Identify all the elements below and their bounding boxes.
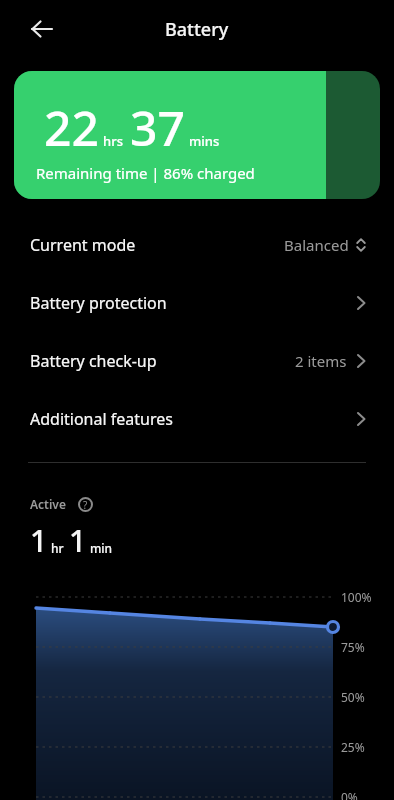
staticText: 1 <box>30 520 48 560</box>
button[interactable]: Battery protection <box>0 274 394 332</box>
button[interactable]: Additional features <box>0 390 394 448</box>
staticText: 25% <box>341 739 365 755</box>
staticText: 1 <box>69 520 87 560</box>
staticText: Battery protection <box>30 292 167 314</box>
staticText: 37 <box>130 95 185 160</box>
staticText: Additional features <box>30 408 173 430</box>
button[interactable]: Current mode <box>0 216 394 274</box>
staticText: Current mode <box>30 234 136 256</box>
staticText: ? <box>83 498 88 512</box>
staticText: min <box>90 540 113 556</box>
staticText: 50% <box>341 689 365 705</box>
staticText: 75% <box>341 639 365 655</box>
staticText: hr <box>51 540 64 556</box>
staticText: Active <box>30 496 66 512</box>
button[interactable] <box>26 13 58 45</box>
staticText: 100% <box>341 589 372 605</box>
staticText: hrs <box>103 132 123 150</box>
staticText: 2 items <box>295 351 347 371</box>
staticText: mins <box>189 132 220 150</box>
button[interactable]: 22 <box>14 71 380 199</box>
staticText: 22 <box>44 95 99 160</box>
staticText: 0% <box>341 789 358 800</box>
staticText: Balanced <box>284 235 349 255</box>
staticText: Battery check-up <box>30 350 157 372</box>
staticText: Remaining time | 86% charged <box>36 163 255 183</box>
staticText: Battery <box>165 17 229 42</box>
button[interactable]: Battery check-up <box>0 332 394 390</box>
